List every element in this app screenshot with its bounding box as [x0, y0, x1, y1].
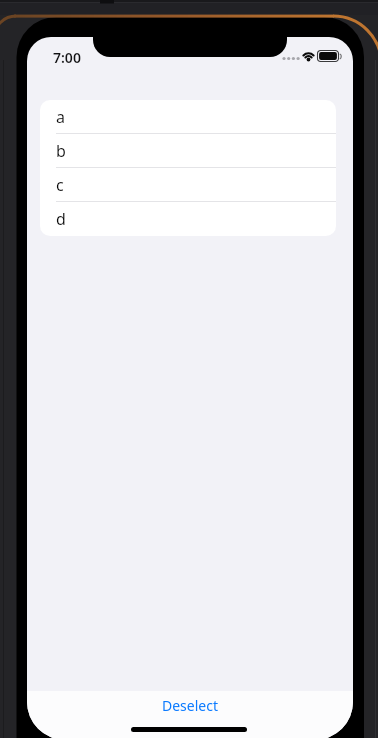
staticText: b: [56, 140, 66, 162]
staticText: d: [56, 208, 66, 230]
button[interactable]: b: [40, 134, 336, 168]
staticText: c: [56, 174, 64, 196]
button[interactable]: d: [40, 202, 336, 236]
button[interactable]: Deselect: [146, 691, 233, 720]
button[interactable]: a: [40, 100, 336, 134]
staticText: Deselect: [162, 696, 218, 715]
staticText: a: [56, 106, 65, 128]
button[interactable]: c: [40, 168, 336, 202]
staticText: 7:00: [53, 48, 81, 67]
